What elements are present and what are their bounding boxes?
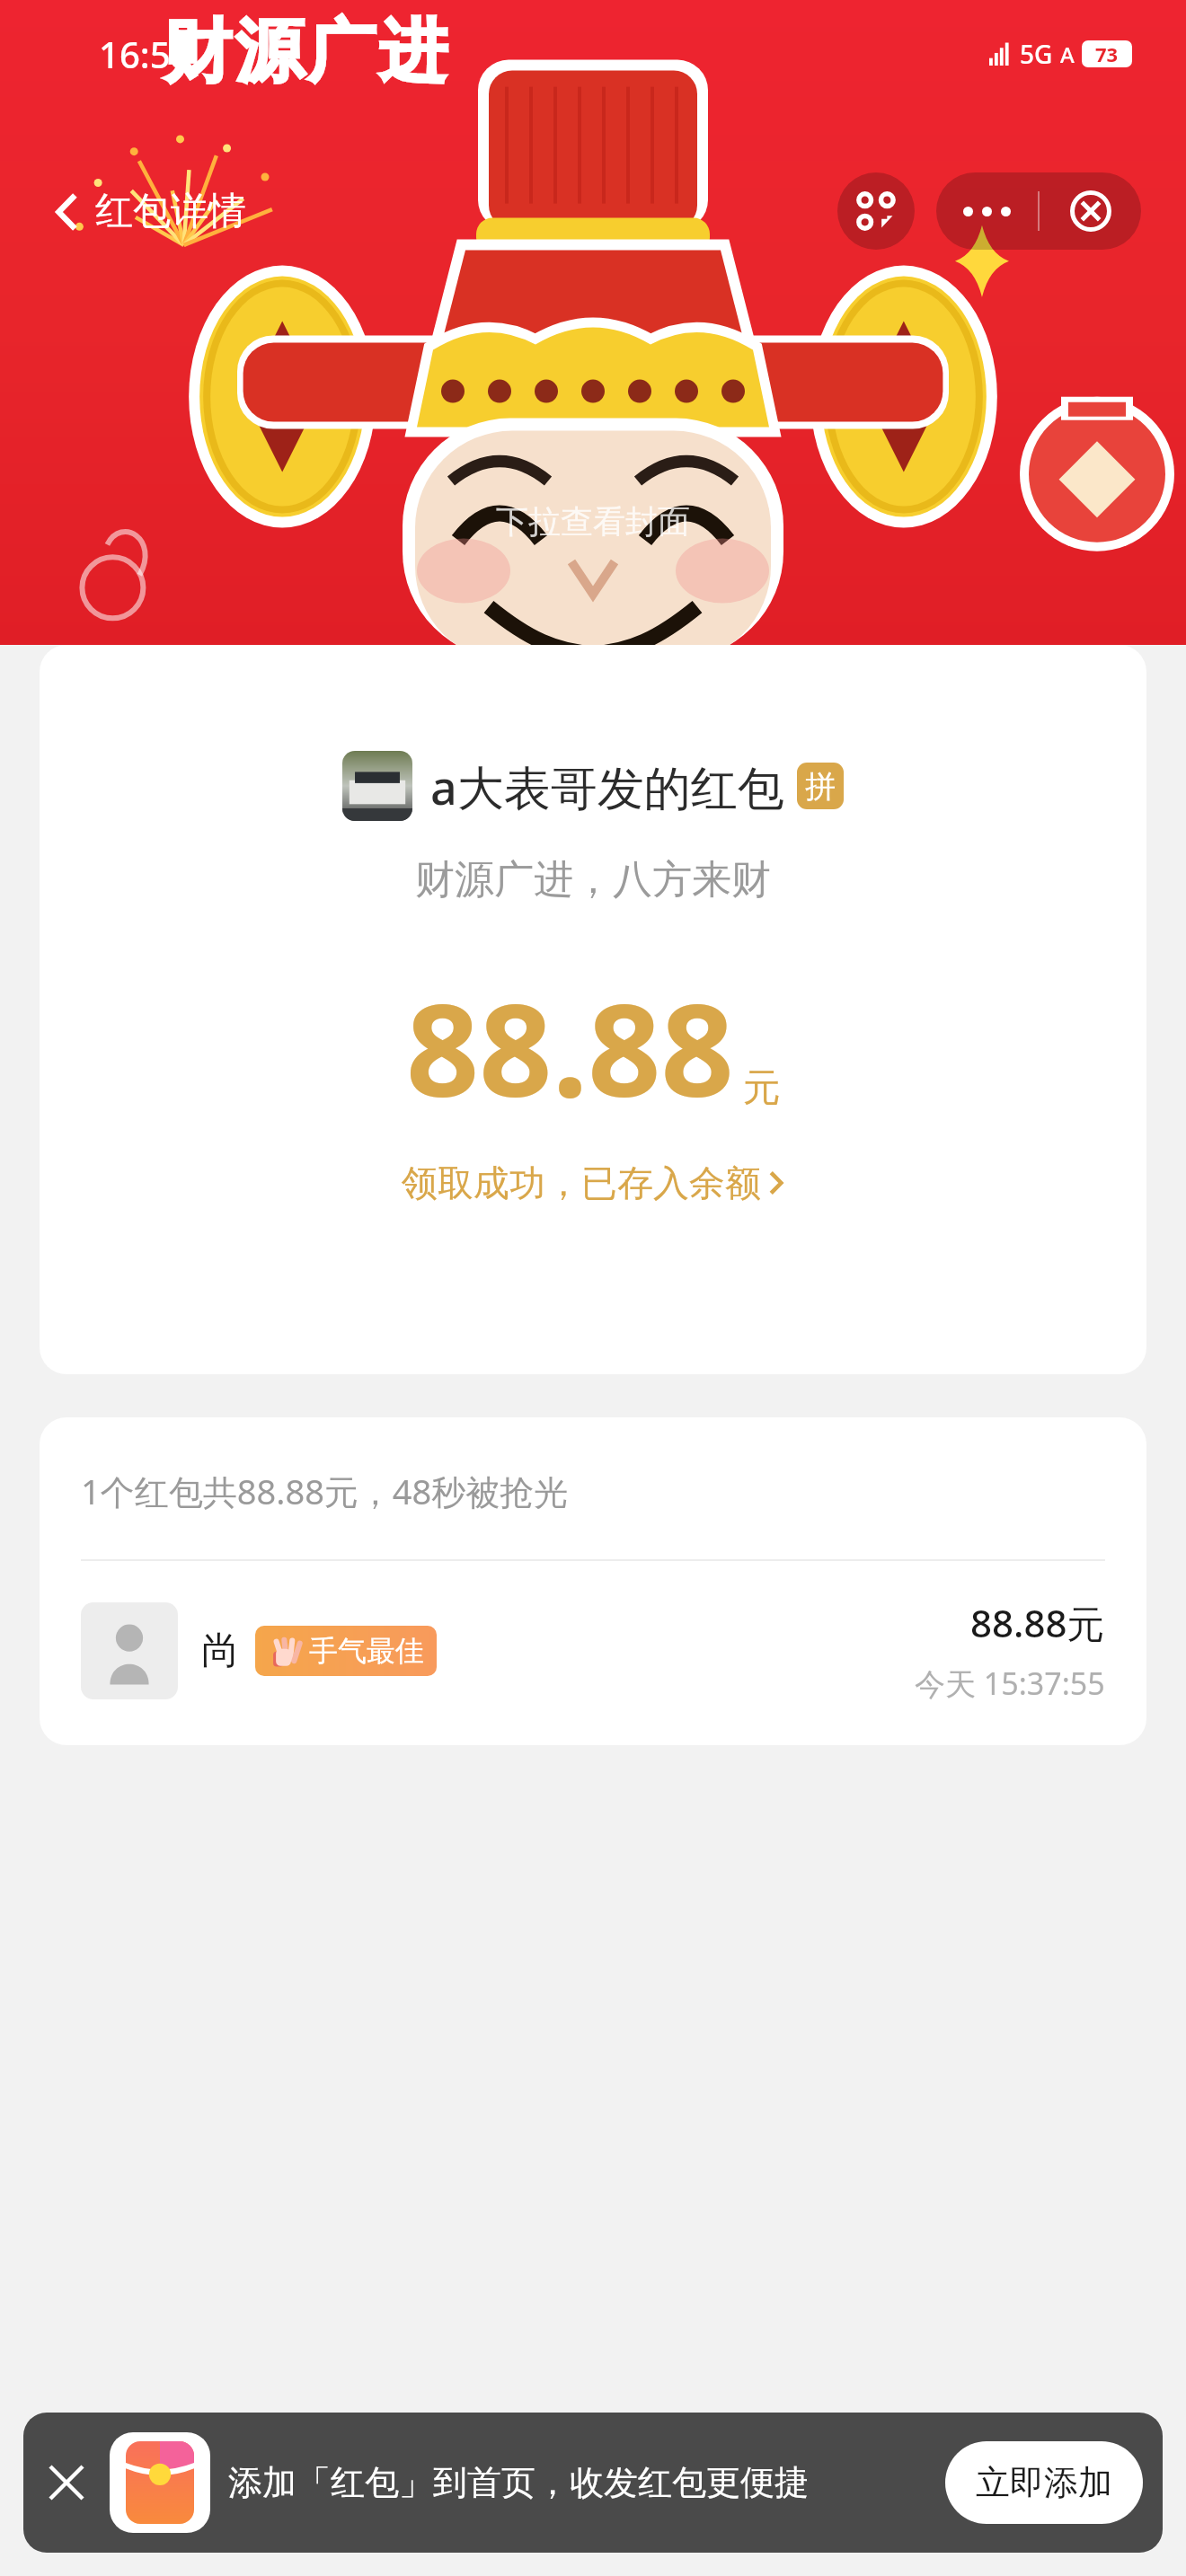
staticText: 立即添加 <box>976 2461 1112 2504</box>
staticText: 88.88元 <box>970 1597 1105 1648</box>
staticText: 领取成功，已存入余额 <box>402 1160 761 1205</box>
staticText: 16:58 <box>99 30 191 78</box>
staticText: 财源广进 <box>162 9 449 95</box>
staticText: 拼 <box>805 767 836 806</box>
staticText: 下拉查看封面 <box>496 501 690 542</box>
staticText: a大表哥发的红包 <box>430 754 784 818</box>
button[interactable]: Close <box>1040 172 1141 250</box>
button[interactable]: Scan <box>837 172 915 250</box>
staticText: A <box>1060 40 1075 69</box>
staticText: 财源广进，八方来财 <box>415 855 771 904</box>
staticText: 添加「红包」到首页，收发红包更便捷 <box>228 2461 934 2504</box>
button[interactable]: 领取成功，已存入余额 <box>393 1155 793 1211</box>
staticText: 尚 <box>201 1628 239 1675</box>
button[interactable]: 立即添加 <box>945 2441 1143 2524</box>
staticText: 1个红包共88.88元，48秒被抢光 <box>81 1468 569 1514</box>
button[interactable]: 尚 <box>40 1561 1146 1745</box>
staticText: 手气最佳 <box>309 1633 424 1669</box>
button[interactable]: 红包详情 <box>41 181 259 243</box>
button[interactable]: 查看红包记录 <box>462 2467 724 2529</box>
staticText: 今天 15:37:55 <box>915 1663 1105 1704</box>
staticText: 元 <box>743 1064 781 1112</box>
staticText: 73 <box>1095 40 1119 67</box>
staticText: 88.88 <box>406 960 734 1134</box>
staticText: 5G <box>1020 37 1053 71</box>
staticText: 红包详情 <box>95 188 246 235</box>
button[interactable]: More <box>936 172 1038 250</box>
button[interactable]: Dismiss <box>23 2413 110 2553</box>
